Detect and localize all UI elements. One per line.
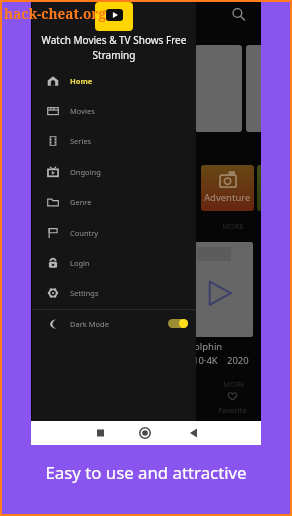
button[interactable]: Genre — [32, 187, 196, 216]
button[interactable]: Login — [32, 248, 196, 277]
staticText: Ongoing — [70, 167, 101, 177]
staticText: Dark Mode — [70, 319, 109, 329]
button[interactable]: Dark Mode — [32, 309, 196, 338]
staticText: Watch Movies & TV Shows Free Straming — [35, 33, 193, 62]
staticText: Adventure — [204, 191, 251, 204]
staticText: Country — [70, 228, 99, 238]
staticText: 10·4K — [193, 354, 218, 367]
button[interactable]: Home — [32, 66, 196, 95]
staticText: Home — [70, 76, 93, 86]
button[interactable]: Search — [229, 4, 249, 24]
staticText: Movies — [70, 106, 95, 116]
staticText: olphin — [194, 340, 223, 353]
staticText: hack-cheat.org — [4, 4, 106, 23]
button[interactable]: Back — [183, 421, 205, 445]
staticText: Settings — [70, 288, 99, 298]
staticText: Series — [70, 136, 92, 146]
button[interactable]: Series — [32, 126, 196, 155]
staticText: MORE — [223, 379, 245, 389]
staticText: MORE — [222, 221, 244, 231]
button[interactable]: Adventure — [201, 165, 254, 211]
staticText: 2020 — [227, 354, 249, 367]
staticText: Login — [70, 258, 90, 268]
staticText: Genre — [70, 197, 92, 207]
button[interactable]: Settings — [32, 278, 196, 307]
button[interactable]: Ongoing — [32, 157, 196, 186]
button[interactable]: Home — [135, 421, 157, 445]
button[interactable]: Recent apps — [89, 421, 111, 445]
staticText: Easy to use and attractive — [2, 461, 290, 484]
button[interactable]: Favorite — [212, 392, 253, 415]
button[interactable]: Movies — [32, 96, 196, 125]
button[interactable]: Country — [32, 218, 196, 247]
staticText: Favorite — [212, 405, 253, 415]
